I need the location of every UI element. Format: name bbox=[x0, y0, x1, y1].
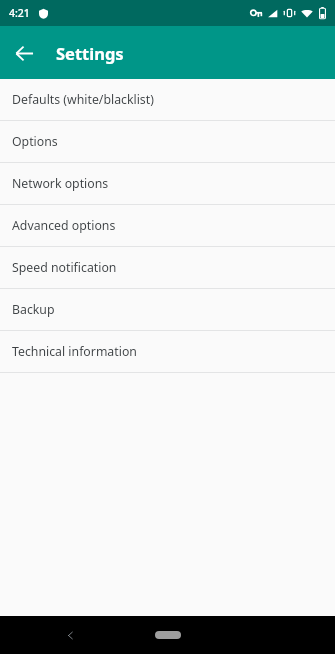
button[interactable]: Back bbox=[58, 623, 82, 647]
button[interactable]: Technical information bbox=[0, 331, 335, 372]
staticText: Speed notification bbox=[12, 259, 117, 276]
button[interactable]: Backup bbox=[0, 289, 335, 330]
staticText: Backup bbox=[12, 301, 55, 318]
staticText: Advanced options bbox=[12, 217, 116, 234]
staticText: Options bbox=[12, 133, 58, 150]
staticText: Technical information bbox=[12, 343, 137, 360]
button[interactable]: Options bbox=[0, 121, 335, 162]
button[interactable]: Back bbox=[5, 34, 43, 72]
staticText: Defaults (white/blacklist) bbox=[12, 91, 154, 108]
button[interactable]: Network options bbox=[0, 163, 335, 204]
button[interactable]: Defaults (white/blacklist) bbox=[0, 79, 335, 120]
staticText: Settings bbox=[56, 42, 124, 64]
button[interactable]: Home bbox=[155, 631, 181, 639]
button[interactable]: Speed notification bbox=[0, 247, 335, 288]
staticText: Network options bbox=[12, 175, 109, 192]
button[interactable]: Advanced options bbox=[0, 205, 335, 246]
staticText: 4:21 bbox=[9, 6, 30, 20]
